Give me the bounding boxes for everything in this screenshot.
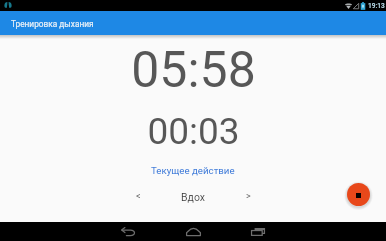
button[interactable]: Предыдущее действие: [129, 189, 147, 204]
button[interactable]: Следующее действие: [239, 189, 257, 204]
staticText: <: [136, 191, 141, 202]
staticText: 05:58: [131, 41, 256, 100]
staticText: Тренировка дыхания: [11, 19, 94, 29]
staticText: Текущее действие: [151, 165, 235, 176]
button[interactable]: Стоп: [347, 183, 370, 206]
button[interactable]: Текущее действие: [147, 164, 239, 177]
staticText: 00:03: [147, 110, 240, 153]
staticText: 19:13: [368, 2, 385, 10]
staticText: Вдох: [181, 191, 205, 203]
button[interactable]: Последние приложения: [246, 222, 270, 241]
button[interactable]: Главный экран: [181, 222, 205, 241]
staticText: >: [246, 191, 251, 202]
button[interactable]: Назад: [116, 222, 140, 241]
